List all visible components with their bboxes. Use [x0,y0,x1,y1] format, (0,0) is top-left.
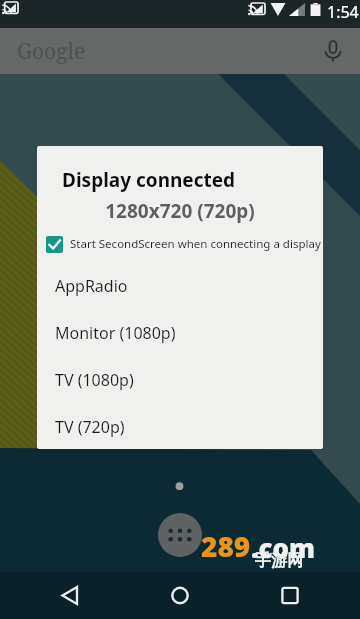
button[interactable]: Recents [266,572,314,619]
button[interactable]: TV (1080p) [37,356,323,403]
staticText: Google [17,37,86,66]
button[interactable]: AppRadio [37,262,323,309]
staticText: Display connected [62,167,236,193]
button[interactable]: Apps [158,513,202,557]
staticText: 289 [201,527,251,565]
button[interactable]: Start SecondScreen when connecting a dis… [37,232,323,256]
button[interactable]: TV (720p) [37,403,323,449]
staticText: 1:54 [327,1,359,23]
button[interactable]: Home [156,572,204,619]
staticText: .com [251,530,316,565]
button[interactable]: Monitor (1080p) [37,309,323,356]
staticText: 1280x720 (720p) [37,198,323,224]
staticText: TV (720p) [55,416,125,438]
staticText: AppRadio [55,275,128,297]
staticText: TV (1080p) [55,369,134,391]
staticText: Monitor (1080p) [55,322,176,344]
staticText: 手游网 [255,551,303,571]
button[interactable]: Google [0,28,360,74]
button[interactable]: Back [46,572,94,619]
button[interactable]: Voice search [320,38,346,64]
staticText: Start SecondScreen when connecting a dis… [70,236,321,252]
